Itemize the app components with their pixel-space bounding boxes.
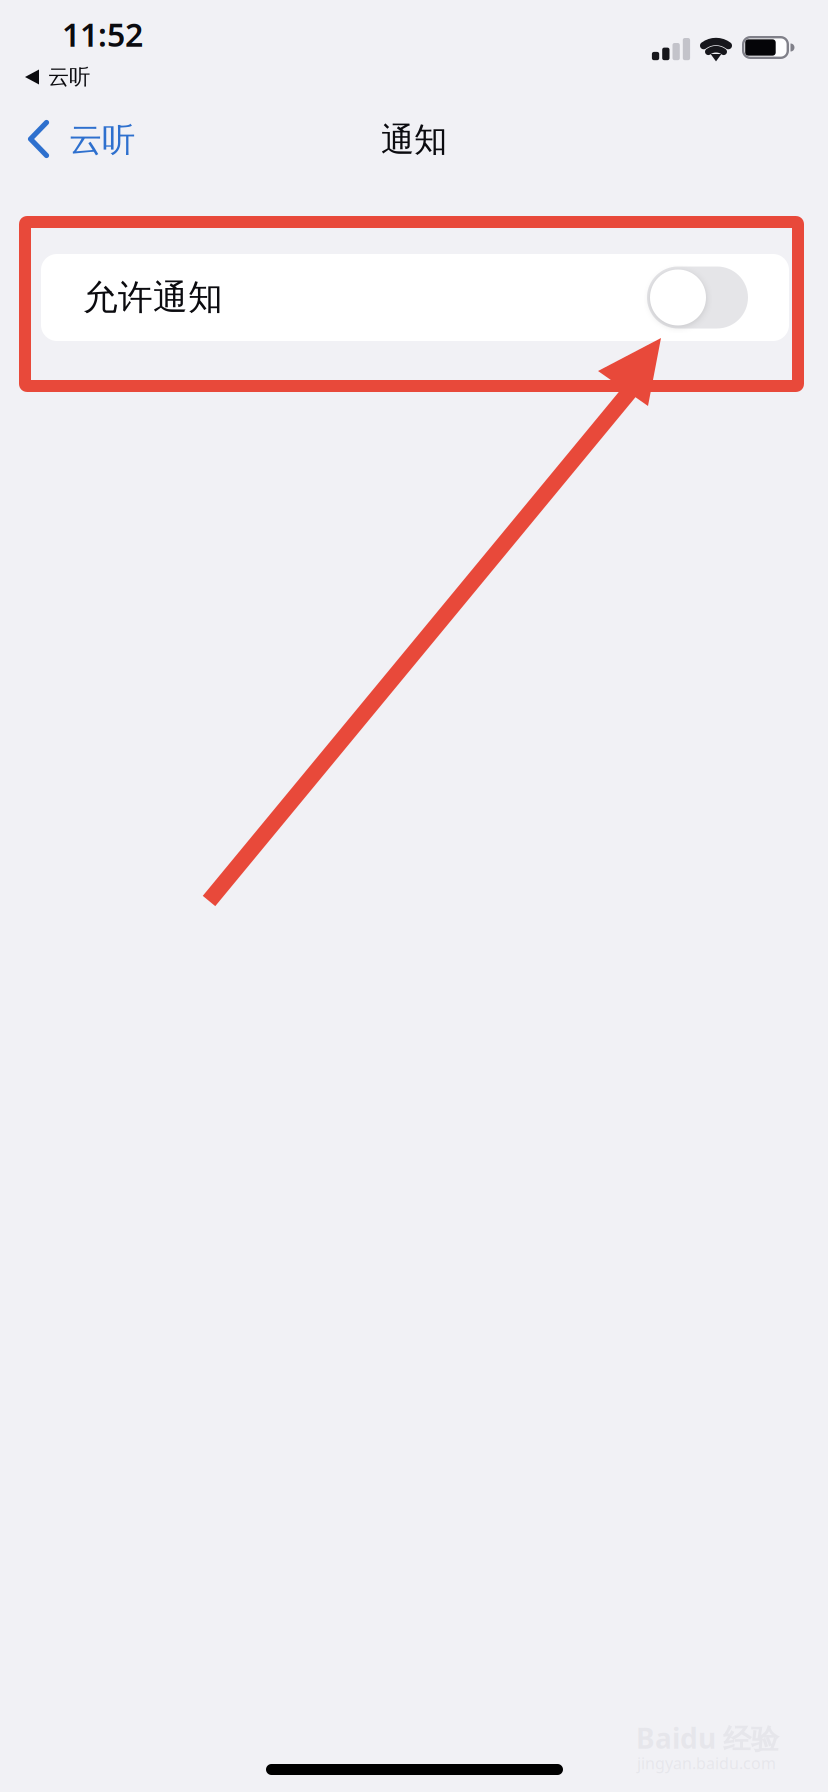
staticText: 通知 bbox=[381, 119, 447, 160]
button[interactable]: 云听 bbox=[15, 60, 100, 94]
staticText: jingyan.baidu.com bbox=[637, 1752, 776, 1774]
button[interactable]: 允许通知 bbox=[647, 266, 748, 328]
staticText: Baidu 经验 bbox=[636, 1719, 779, 1757]
staticText: 11:52 bbox=[62, 13, 143, 55]
staticText: 允许通知 bbox=[83, 276, 223, 319]
staticText: 云听 bbox=[48, 64, 90, 90]
button[interactable]: 云听 bbox=[0, 110, 135, 169]
staticText: 云听 bbox=[69, 119, 135, 160]
button[interactable]: 允许通知 bbox=[41, 254, 789, 341]
